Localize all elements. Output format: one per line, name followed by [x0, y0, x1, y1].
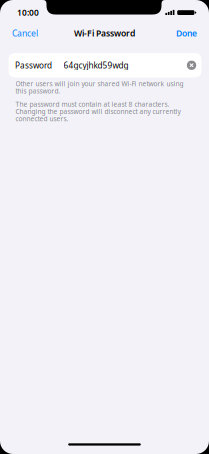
staticText: 10:00: [17, 7, 39, 18]
staticText: The password must contain at least 8 cha…: [15, 101, 180, 122]
staticText: Done: [176, 27, 197, 39]
staticText: 64gcyjhkd59wdg: [63, 60, 128, 71]
button[interactable]: Clear text: [187, 61, 196, 70]
staticText: Cancel: [12, 27, 38, 39]
button[interactable]: Done: [176, 27, 197, 39]
staticText: Other users will join your shared Wi-Fi …: [15, 80, 183, 95]
staticText: Wi-Fi Password: [74, 27, 135, 39]
button[interactable]: Cancel: [12, 27, 38, 39]
staticText: Password: [15, 60, 52, 71]
